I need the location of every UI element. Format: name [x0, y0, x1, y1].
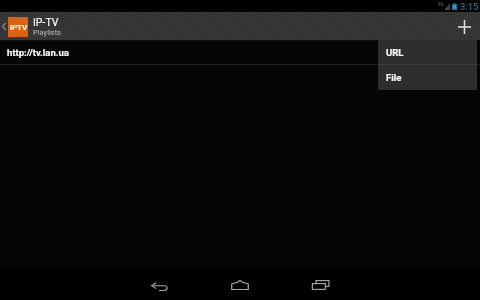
staticText: IPTV: [10, 23, 27, 32]
staticText: URL: [386, 47, 404, 58]
staticText: IP-TV: [33, 16, 59, 28]
button[interactable]: URL: [378, 40, 477, 64]
staticText: Playlists: [33, 28, 61, 37]
button[interactable]: Navigate up: [0, 12, 61, 41]
button[interactable]: Add: [449, 12, 480, 41]
button[interactable]: File: [378, 65, 477, 90]
staticText: File: [386, 72, 402, 83]
button[interactable]: Home: [217, 268, 263, 300]
staticText: http://tv.lan.ua: [7, 47, 69, 58]
button[interactable]: http://tv.lan.ua: [0, 41, 480, 65]
other: Navigate up: [0, 12, 8, 41]
button[interactable]: Back: [136, 268, 182, 300]
staticText: 3G: [438, 2, 444, 7]
staticText: 3:15: [460, 1, 479, 12]
button[interactable]: Recent apps: [298, 268, 344, 300]
